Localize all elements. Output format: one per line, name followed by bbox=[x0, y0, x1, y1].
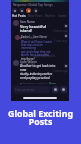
staticText: 1 hour ago bbox=[54, 39, 68, 43]
button[interactable]: Expand All Replies bbox=[33, 54, 56, 58]
staticText: Response: Global Top Songs bbox=[13, 3, 53, 7]
button[interactable]: Like post bbox=[64, 24, 68, 28]
button[interactable]: Translate bbox=[24, 62, 36, 66]
button[interactable]: Like post 2 bbox=[64, 64, 68, 68]
button[interactable]: Share bbox=[33, 8, 38, 13]
button[interactable]: Replies bbox=[45, 14, 56, 18]
button[interactable]: Post comments bbox=[13, 86, 50, 93]
button[interactable]: Translate bbox=[23, 36, 35, 40]
staticText: trip there! bbox=[21, 57, 35, 61]
staticText: Sam Name bbox=[20, 20, 36, 24]
button[interactable]: Send bbox=[60, 86, 67, 93]
button[interactable]: Emoji bbox=[52, 86, 59, 93]
button[interactable]: New Posts bbox=[28, 14, 43, 18]
staticText: Wow it will have I want that was and an … bbox=[21, 40, 56, 50]
button[interactable]: Liam Wilson bbox=[13, 60, 56, 86]
staticText: Very beautiful island! bbox=[20, 24, 56, 34]
button[interactable]: Like bbox=[12, 8, 17, 13]
button[interactable]: Like reply bbox=[64, 34, 68, 38]
staticText: 3 hours ago bbox=[53, 29, 68, 33]
button[interactable]: Sam Name bbox=[13, 20, 56, 40]
staticText: Another to get back into now study+indus… bbox=[20, 64, 56, 80]
button[interactable]: Rachel → Sam Name bbox=[15, 35, 56, 66]
button[interactable]: Show bbox=[49, 82, 56, 86]
button[interactable]: Favourite bbox=[26, 8, 31, 13]
staticText: Liam Wilson bbox=[20, 60, 37, 64]
staticText: Global Exciting Posts bbox=[0, 108, 81, 128]
button[interactable]: Hot Posts bbox=[12, 14, 26, 18]
button[interactable]: Comment bbox=[19, 8, 24, 13]
staticText: 5 hours ago bbox=[53, 69, 68, 73]
staticText: Post comments bbox=[15, 88, 35, 92]
staticText: Rachel → Sam Name bbox=[21, 35, 48, 39]
staticText: got and show that me worth for a beautif… bbox=[21, 50, 56, 57]
staticText: Another to get back bbox=[23, 82, 48, 86]
button[interactable]: Saved bbox=[58, 14, 67, 18]
